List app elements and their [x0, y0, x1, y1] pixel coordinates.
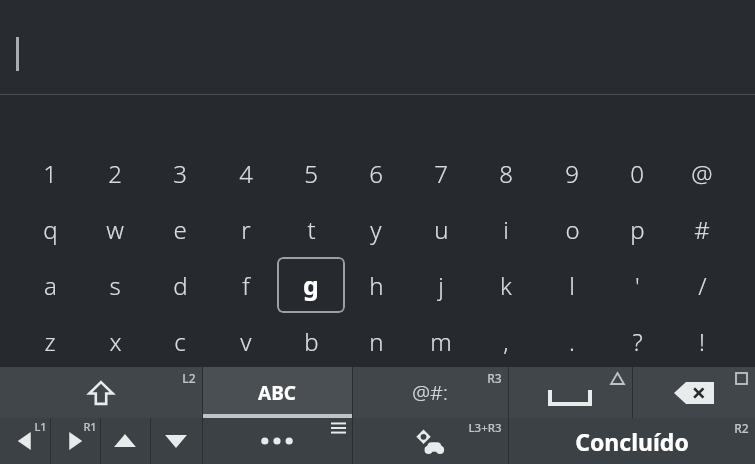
button[interactable]: h	[342, 257, 410, 313]
button[interactable]: i	[472, 201, 540, 257]
staticText: r	[241, 213, 251, 246]
button[interactable]: 6	[342, 145, 410, 201]
staticText: v	[240, 325, 252, 358]
staticText: g	[303, 268, 319, 302]
button[interactable]: 3	[146, 145, 214, 201]
staticText: L3+R3	[468, 420, 502, 436]
staticText: f	[242, 269, 250, 302]
button[interactable]: g	[277, 257, 345, 313]
staticText: ?	[632, 325, 643, 358]
button[interactable]: j	[407, 257, 475, 313]
button[interactable]: u	[407, 201, 475, 257]
button[interactable]: 1	[16, 145, 84, 201]
staticText: s	[109, 269, 121, 302]
button[interactable]: o	[538, 201, 606, 257]
button[interactable]: Backspace	[632, 367, 755, 418]
button[interactable]: Controller settings	[352, 418, 508, 464]
button[interactable]: !	[668, 313, 736, 369]
button[interactable]: 8	[472, 145, 540, 201]
button[interactable]: w	[81, 201, 149, 257]
staticText: 5	[304, 157, 318, 190]
staticText: b	[304, 325, 319, 358]
button[interactable]: q	[16, 201, 84, 257]
button[interactable]: 9	[538, 145, 606, 201]
button[interactable]: b	[277, 313, 345, 369]
button[interactable]: Left	[0, 418, 50, 464]
button[interactable]: e	[146, 201, 214, 257]
button[interactable]: n	[342, 313, 410, 369]
button[interactable]: z	[16, 313, 84, 369]
button[interactable]: '	[603, 257, 671, 313]
staticText: R1	[83, 419, 97, 434]
button[interactable]: @#:	[352, 367, 508, 418]
staticText: 7	[434, 157, 448, 190]
staticText: 4	[239, 157, 253, 190]
staticText: p	[630, 213, 645, 246]
staticText: 8	[499, 157, 513, 190]
button[interactable]: c	[146, 313, 214, 369]
staticText: u	[434, 213, 449, 246]
staticText: Concluído	[575, 426, 689, 457]
button[interactable]: s	[81, 257, 149, 313]
staticText: 3	[173, 157, 187, 190]
button[interactable]: 0	[603, 145, 671, 201]
button[interactable]: /	[668, 257, 736, 313]
button[interactable]: d	[146, 257, 214, 313]
button[interactable]: Right	[50, 418, 100, 464]
staticText: h	[369, 269, 384, 302]
staticText: t	[307, 213, 316, 246]
staticText: l	[569, 269, 575, 302]
staticText: ,	[503, 325, 509, 358]
staticText: '	[635, 269, 640, 302]
staticText: 2	[108, 157, 122, 190]
button[interactable]: #	[668, 201, 736, 257]
button[interactable]: 4	[212, 145, 280, 201]
staticText: /	[698, 269, 707, 302]
staticText: m	[430, 325, 452, 358]
button[interactable]: l	[538, 257, 606, 313]
staticText: i	[503, 213, 509, 246]
staticText: L1	[34, 419, 47, 434]
button[interactable]: 2	[81, 145, 149, 201]
button[interactable]: 7	[407, 145, 475, 201]
button[interactable]: f	[212, 257, 280, 313]
button[interactable]: k	[472, 257, 540, 313]
button[interactable]: Down	[150, 418, 202, 464]
button[interactable]: x	[81, 313, 149, 369]
button[interactable]: t	[277, 201, 345, 257]
button[interactable]: ABC	[202, 367, 352, 418]
staticText: #	[694, 213, 710, 246]
button[interactable]: Space	[508, 367, 632, 418]
button[interactable]: ?	[603, 313, 671, 369]
button[interactable]: Up	[100, 418, 150, 464]
staticText: e	[173, 213, 187, 246]
button[interactable]: 5	[277, 145, 345, 201]
button[interactable]: p	[603, 201, 671, 257]
staticText: @#:	[412, 379, 448, 406]
button[interactable]: Shift	[0, 367, 202, 418]
button[interactable]: More options	[202, 418, 352, 464]
staticText: j	[438, 269, 444, 302]
button[interactable]: y	[342, 201, 410, 257]
staticText: 6	[369, 157, 383, 190]
staticText: x	[109, 325, 122, 358]
staticText: 1	[43, 157, 57, 190]
button[interactable]: v	[212, 313, 280, 369]
button[interactable]: m	[407, 313, 475, 369]
staticText: k	[500, 269, 512, 302]
staticText: n	[369, 325, 384, 358]
staticText: c	[174, 325, 186, 358]
button[interactable]: Concluído	[508, 418, 755, 464]
button[interactable]: ,	[472, 313, 540, 369]
button[interactable]: @	[668, 145, 736, 201]
button[interactable]	[0, 0, 755, 95]
button[interactable]: r	[212, 201, 280, 257]
staticText: @	[691, 157, 713, 190]
button[interactable]: a	[16, 257, 84, 313]
staticText: 0	[630, 157, 644, 190]
staticText: w	[106, 213, 124, 246]
staticText: z	[44, 325, 56, 358]
staticText: !	[699, 325, 705, 358]
button[interactable]: .	[538, 313, 606, 369]
staticText: q	[43, 213, 58, 246]
